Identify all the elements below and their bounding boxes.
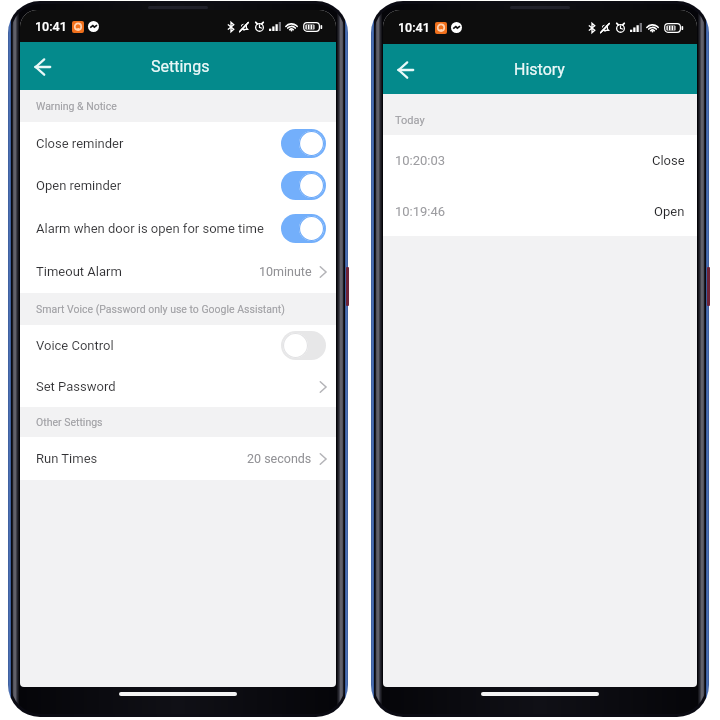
staticText: Today xyxy=(395,114,425,127)
staticText: 20 seconds xyxy=(247,451,312,466)
button[interactable]: Back xyxy=(389,53,421,85)
staticText: 10:41 xyxy=(398,20,430,35)
button[interactable]: Switch off xyxy=(281,331,326,360)
staticText: Settings xyxy=(151,57,210,76)
button[interactable]: Set Password xyxy=(20,366,336,407)
button[interactable]: Voice Control xyxy=(20,325,336,366)
staticText: 10:41 xyxy=(35,19,67,34)
staticText: Voice Control xyxy=(36,338,277,353)
staticText: Open xyxy=(654,204,685,219)
button[interactable]: Run Times xyxy=(20,437,336,480)
staticText: Close reminder xyxy=(36,136,277,151)
staticText: Other Settings xyxy=(36,416,103,428)
button[interactable]: 10:19:46 xyxy=(383,186,697,236)
button[interactable]: 10:20:03 xyxy=(383,135,697,186)
button[interactable]: Close reminder xyxy=(20,122,336,164)
staticText: History xyxy=(514,60,565,79)
staticText: Set Password xyxy=(36,379,116,394)
staticText: Run Times xyxy=(36,451,98,466)
button[interactable]: Open reminder xyxy=(20,164,336,207)
staticText: 10:19:46 xyxy=(395,204,446,219)
button[interactable]: Timeout Alarm xyxy=(20,250,336,293)
button[interactable]: Alarm when door is open for some time xyxy=(20,207,336,250)
button[interactable]: Switch on xyxy=(281,214,326,243)
staticText: Close xyxy=(652,153,685,168)
staticText: Open reminder xyxy=(36,178,277,193)
staticText: 10minute xyxy=(259,264,312,279)
staticText: Smart Voice (Password only use to Google… xyxy=(36,303,285,315)
button[interactable]: Switch on xyxy=(281,171,326,200)
button[interactable]: Switch on xyxy=(281,129,326,158)
staticText: Alarm when door is open for some time xyxy=(36,221,277,236)
staticText: 10:20:03 xyxy=(395,153,446,168)
staticText: Timeout Alarm xyxy=(36,264,122,279)
button[interactable]: Back xyxy=(26,50,58,82)
staticText: Warning & Notice xyxy=(36,100,117,112)
